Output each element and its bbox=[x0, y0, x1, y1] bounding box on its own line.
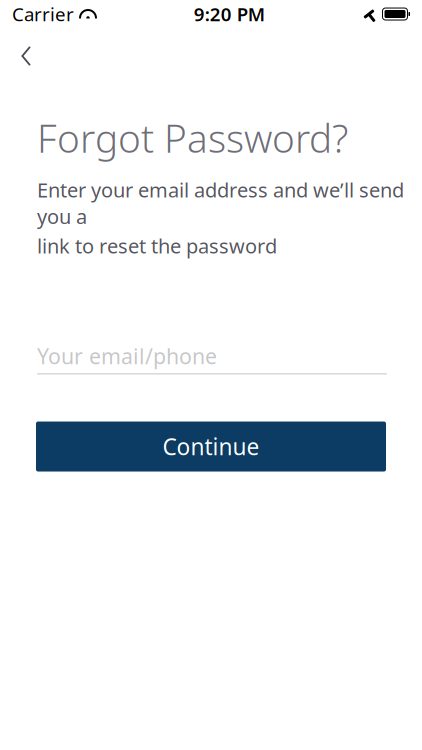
staticText: Continue bbox=[162, 431, 259, 462]
staticText: Forgot Password? bbox=[37, 112, 348, 163]
staticText: link to reset the password bbox=[37, 232, 277, 259]
button[interactable]: Your email/phone bbox=[37, 339, 387, 373]
button[interactable]: Continue bbox=[36, 421, 386, 471]
staticText: Carrier bbox=[12, 2, 74, 26]
staticText: Your email/phone bbox=[37, 342, 217, 370]
staticText: Enter your email address and we’ll send … bbox=[37, 176, 404, 229]
staticText: 9:20 PM bbox=[194, 2, 265, 26]
button[interactable]: Back bbox=[0, 34, 52, 78]
